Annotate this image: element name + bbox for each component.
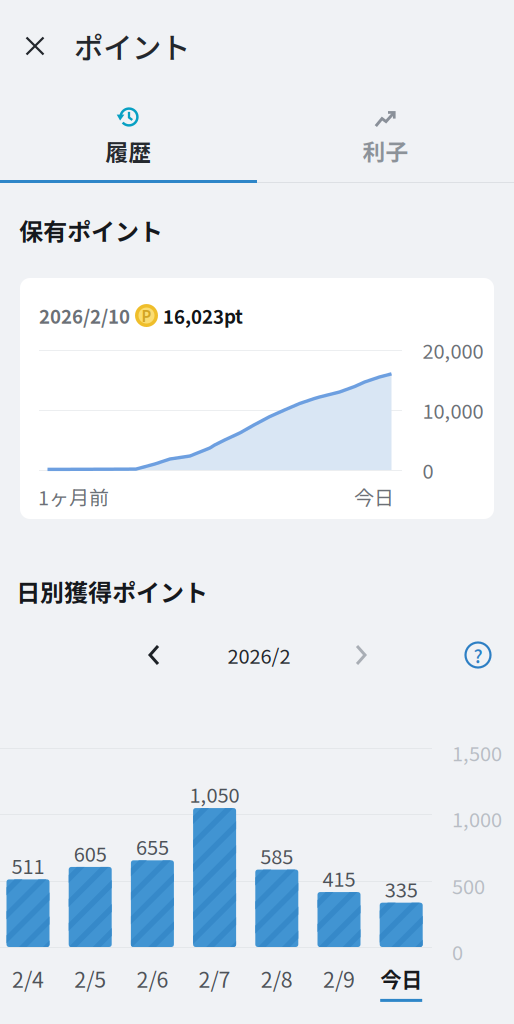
- staticText: 今日: [354, 482, 394, 511]
- button[interactable]: Help: [455, 630, 501, 680]
- staticText: ポイント: [74, 25, 190, 67]
- staticText: 保有ポイント: [19, 213, 163, 248]
- staticText: 511: [11, 851, 44, 880]
- staticText: 1ヶ月前: [38, 482, 109, 511]
- staticText: 2/8: [261, 963, 293, 994]
- staticText: P: [141, 305, 151, 326]
- staticText: 利子: [362, 134, 408, 167]
- staticText: 415: [322, 864, 355, 893]
- staticText: 16,023pt: [163, 302, 243, 329]
- staticText: 10,000: [423, 395, 484, 424]
- staticText: 1,050: [190, 780, 240, 809]
- staticText: 1,000: [452, 804, 502, 833]
- button[interactable]: Next month: [338, 630, 384, 680]
- staticText: 500: [452, 871, 485, 900]
- staticText: 2026/2/10: [39, 302, 130, 329]
- staticText: 2/4: [12, 963, 44, 994]
- staticText: ?: [473, 641, 482, 668]
- staticText: 0: [452, 937, 463, 966]
- staticText: 今日: [380, 963, 422, 994]
- staticText: 585: [260, 841, 293, 870]
- button[interactable]: 履歴: [0, 92, 257, 180]
- staticText: 2026/2: [227, 640, 290, 669]
- button[interactable]: 利子: [257, 92, 514, 180]
- staticText: 1,500: [452, 738, 502, 767]
- staticText: 2/9: [323, 963, 355, 994]
- button[interactable]: Close: [10, 21, 60, 71]
- staticText: 655: [136, 832, 169, 861]
- staticText: 20,000: [423, 335, 484, 364]
- staticText: 2/5: [74, 963, 106, 994]
- staticText: 335: [385, 874, 418, 903]
- staticText: 605: [74, 838, 107, 867]
- staticText: 0: [423, 455, 434, 484]
- button[interactable]: Previous month: [131, 630, 177, 680]
- staticText: 日別獲得ポイント: [16, 574, 208, 609]
- staticText: 履歴: [105, 135, 151, 167]
- staticText: 2/6: [136, 963, 168, 994]
- staticText: 2/7: [199, 963, 231, 994]
